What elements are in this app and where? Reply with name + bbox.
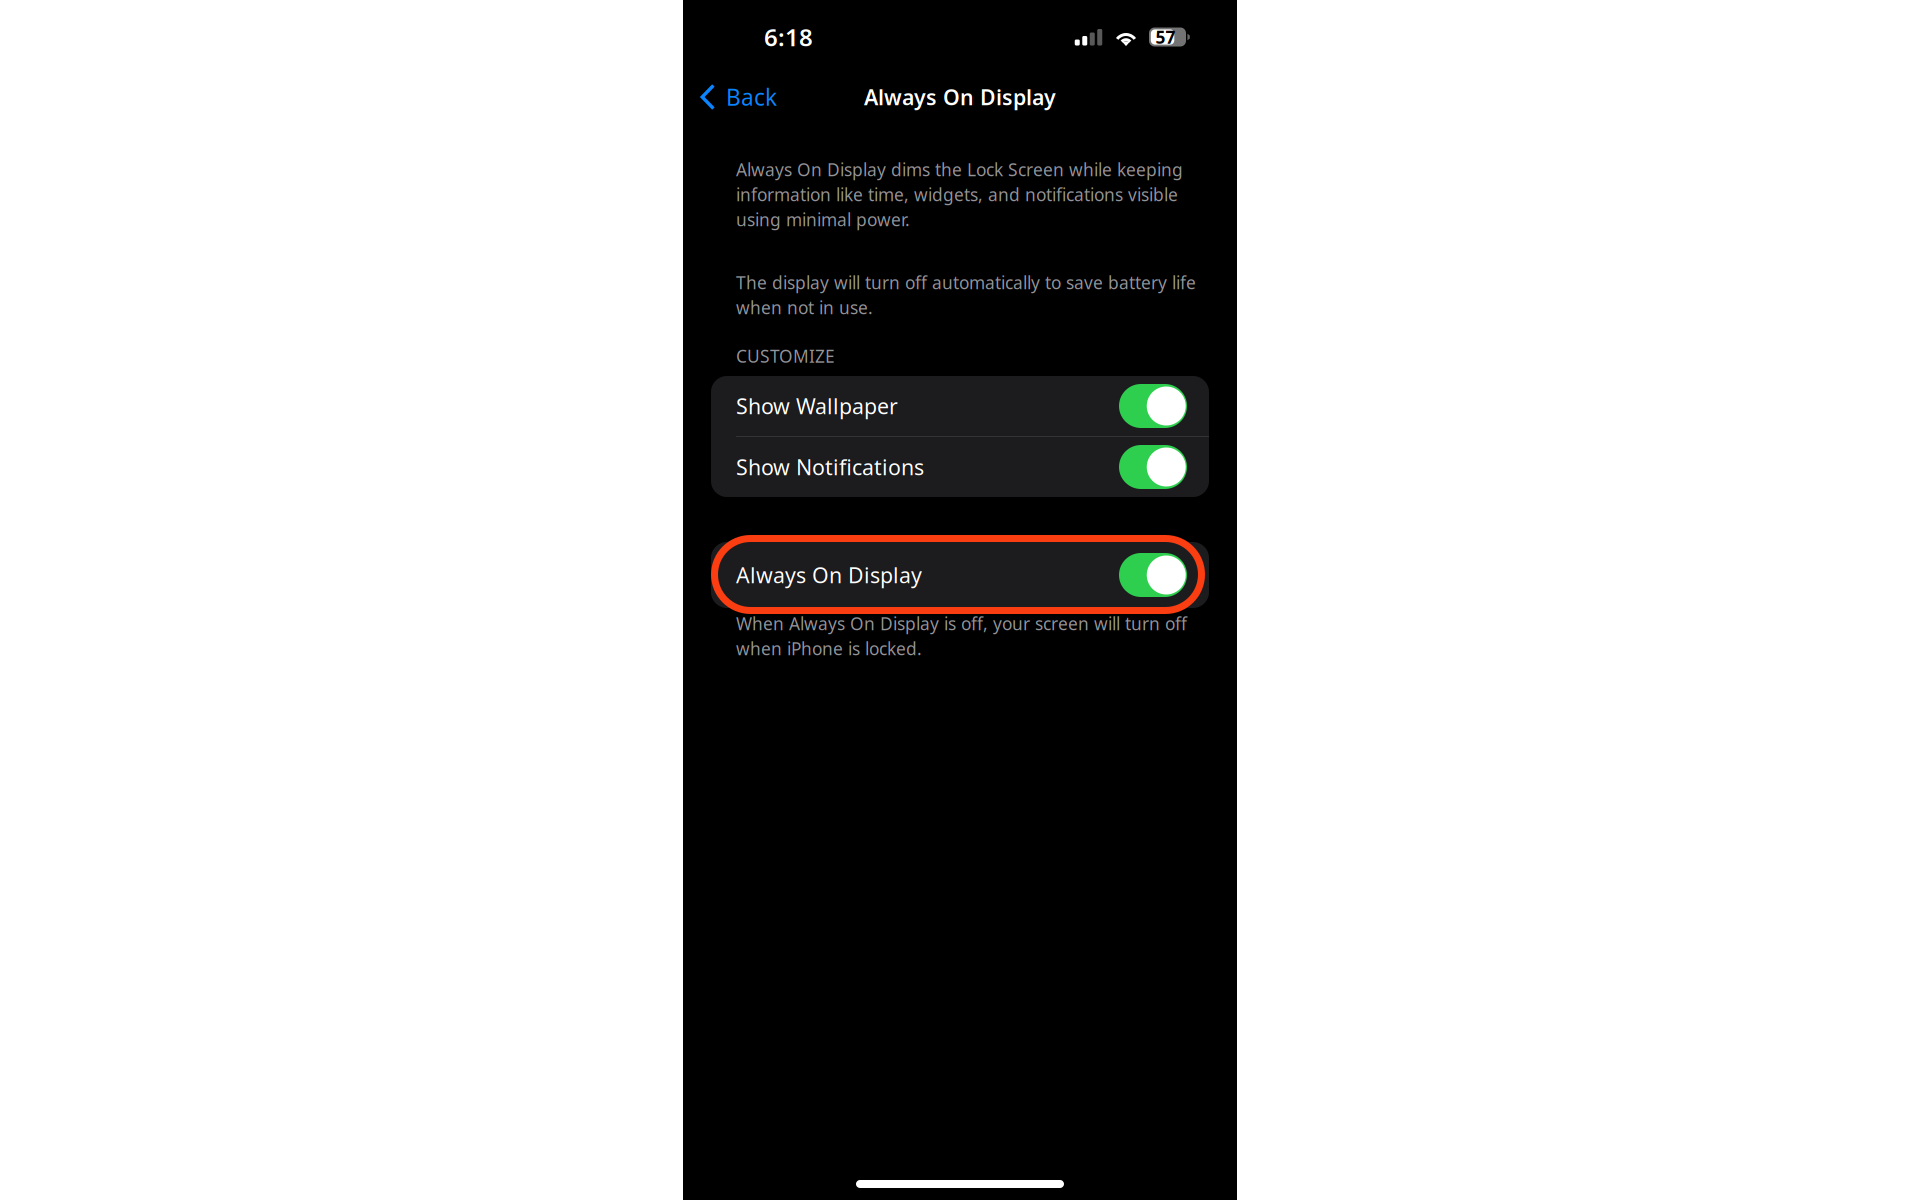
button[interactable]: Back	[683, 74, 807, 120]
staticText: Show Wallpaper	[736, 392, 898, 420]
staticText: The display will turn off automatically …	[736, 271, 1196, 319]
staticText: Back	[726, 82, 777, 112]
staticText: Always On Display	[864, 83, 1056, 111]
button[interactable]: Show Notifications, on	[711, 437, 1209, 497]
staticText: Show Notifications	[736, 453, 924, 481]
staticText: 6:18	[764, 21, 813, 53]
staticText: Always On Display dims the Lock Screen w…	[736, 158, 1183, 231]
button[interactable]: Always On Display, on	[711, 542, 1209, 608]
staticText: When Always On Display is off, your scre…	[736, 612, 1187, 660]
staticText: 57	[1155, 25, 1175, 48]
button[interactable]: Show Wallpaper, on	[711, 376, 1209, 436]
staticText: Always On Display	[736, 561, 922, 589]
staticText: CUSTOMIZE	[736, 344, 835, 367]
